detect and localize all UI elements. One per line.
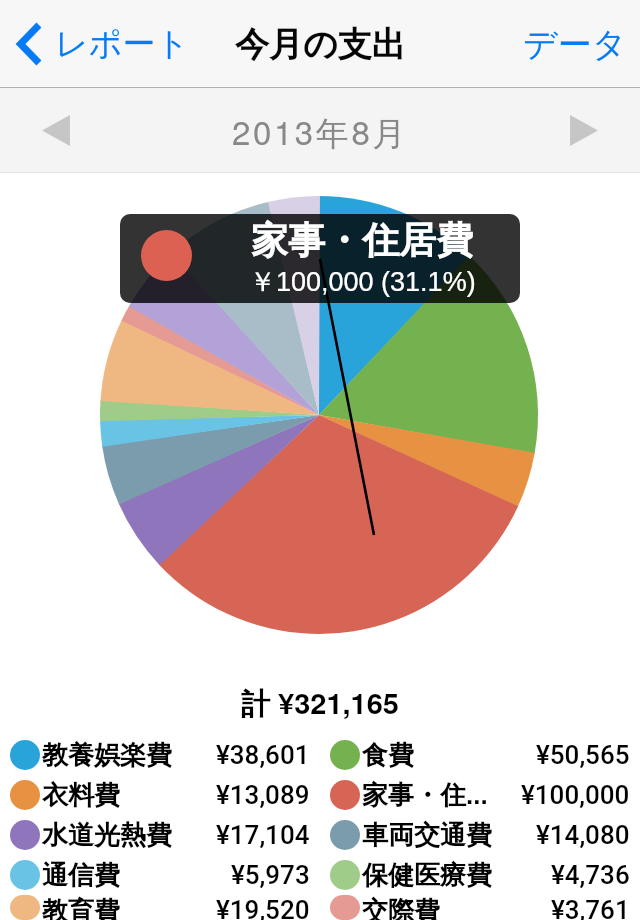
staticText: ¥5,973 <box>231 860 310 890</box>
staticText: ¥19,520 <box>216 895 310 920</box>
button[interactable]: 車両交通費 <box>320 815 640 855</box>
button[interactable]: 通信費 <box>0 855 320 895</box>
staticText: 交際費 <box>362 895 440 920</box>
staticText: 保健医療費 <box>362 859 492 892</box>
button[interactable]: 家事・住... <box>320 775 640 815</box>
staticText: ¥13,089 <box>216 780 310 810</box>
staticText: 教養娯楽費 <box>42 739 172 772</box>
staticText: データ <box>523 23 627 66</box>
staticText: ¥38,601 <box>216 740 310 770</box>
button[interactable]: Previous month <box>0 88 112 173</box>
button[interactable]: 食費 <box>320 735 640 775</box>
button[interactable]: 家事・住居費 <box>120 214 520 303</box>
staticText: 教育費 <box>42 895 120 920</box>
staticText: ¥100,000 <box>521 780 630 810</box>
button[interactable]: 衣料費 <box>0 775 320 815</box>
staticText: ¥17,104 <box>216 820 310 850</box>
staticText: ￥100,000 (31.1%) <box>249 265 476 299</box>
staticText: 水道光熱費 <box>42 819 172 852</box>
staticText: ¥4,736 <box>551 860 630 890</box>
staticText: 食費 <box>362 739 414 772</box>
button[interactable]: 保健医療費 <box>320 855 640 895</box>
staticText: 2013年8月 <box>232 107 408 155</box>
button[interactable]: Next month <box>528 88 640 173</box>
staticText: 車両交通費 <box>362 819 492 852</box>
button[interactable]: データ <box>503 0 640 88</box>
button[interactable]: 水道光熱費 <box>0 815 320 855</box>
button[interactable]: 交際費 <box>320 895 640 920</box>
button[interactable]: 教養娯楽費 <box>0 735 320 775</box>
staticText: 今月の支出 <box>235 23 406 66</box>
staticText: ¥3,761 <box>551 895 630 920</box>
staticText: 家事・住... <box>362 779 488 812</box>
staticText: ¥14,080 <box>536 820 630 850</box>
staticText: ¥50,565 <box>536 740 630 770</box>
button[interactable]: 教育費 <box>0 895 320 920</box>
staticText: レポート <box>55 23 190 65</box>
staticText: 家事・住居費 <box>251 217 473 264</box>
button[interactable]: レポート <box>0 0 200 88</box>
staticText: 通信費 <box>42 859 120 892</box>
staticText: 計 ¥321,165 <box>241 681 399 723</box>
staticText: 衣料費 <box>42 779 120 812</box>
